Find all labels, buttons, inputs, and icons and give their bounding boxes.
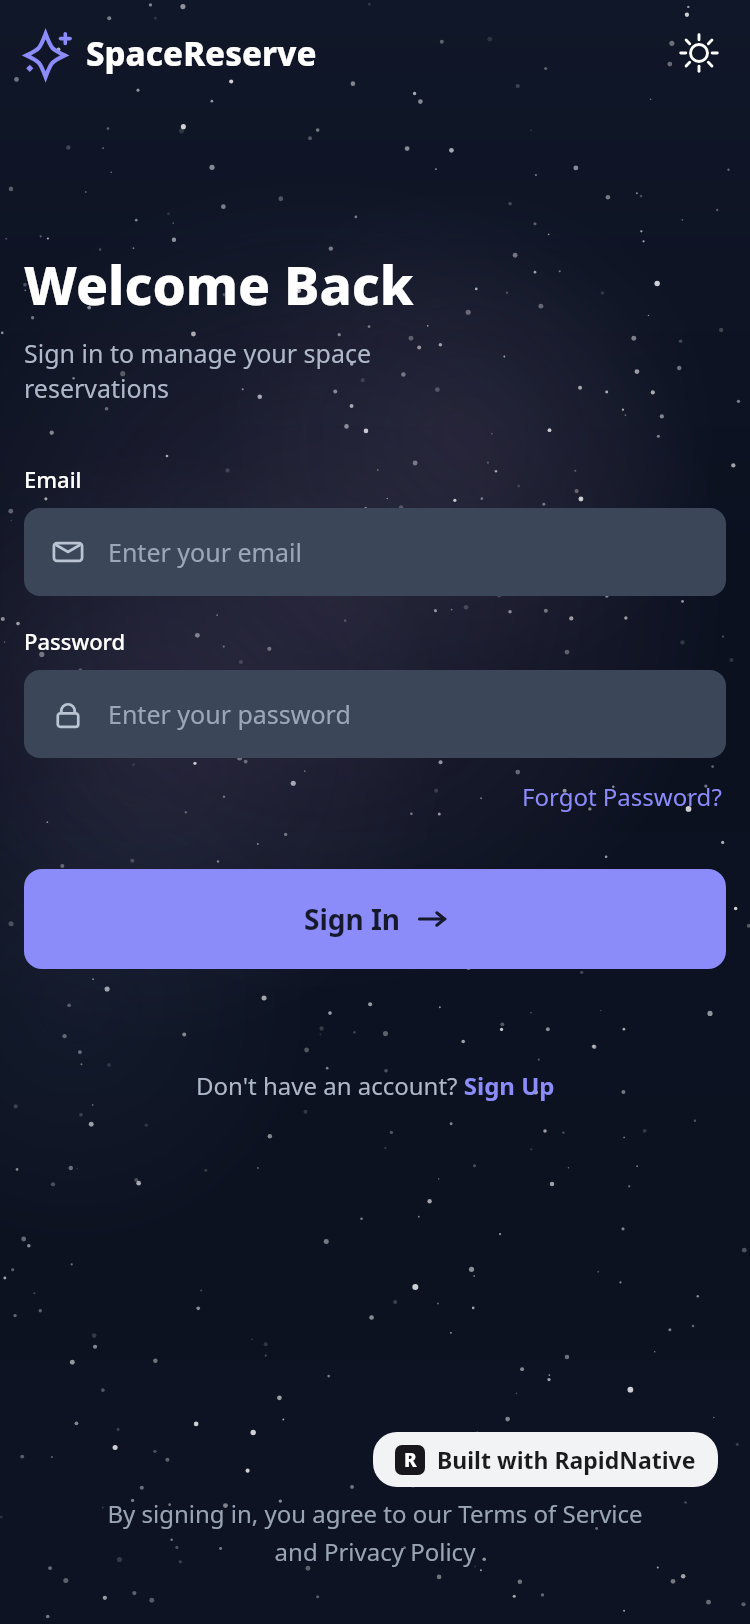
button[interactable]: Enter your password xyxy=(24,670,726,758)
staticText: Welcome Back xyxy=(24,248,414,320)
button[interactable]: SpaceReserve xyxy=(24,29,317,77)
button[interactable]: Toggle theme xyxy=(672,26,726,80)
staticText: Enter your password xyxy=(108,697,351,731)
staticText: SpaceReserve xyxy=(86,31,317,76)
staticText: Enter your email xyxy=(108,535,302,569)
staticText: Sign In xyxy=(304,900,401,938)
button[interactable]: Sign In xyxy=(24,869,726,969)
staticText: Password xyxy=(24,626,126,656)
button[interactable]: Enter your email xyxy=(24,508,726,596)
staticText: Forgot Password? xyxy=(522,780,722,813)
staticText: R xyxy=(404,1447,417,1473)
button[interactable]: Don't have an account? Sign Up xyxy=(190,1063,561,1108)
staticText: Built with RapidNative xyxy=(437,1444,696,1475)
staticText: By signing in, you agree to our Terms of… xyxy=(107,1497,643,1568)
button[interactable]: R xyxy=(373,1432,718,1487)
button[interactable]: Forgot Password? xyxy=(518,776,726,817)
staticText: Sign in to manage your space reservation… xyxy=(24,336,372,406)
staticText: Email xyxy=(24,464,82,494)
staticText: Don't have an account? Sign Up xyxy=(196,1069,555,1102)
